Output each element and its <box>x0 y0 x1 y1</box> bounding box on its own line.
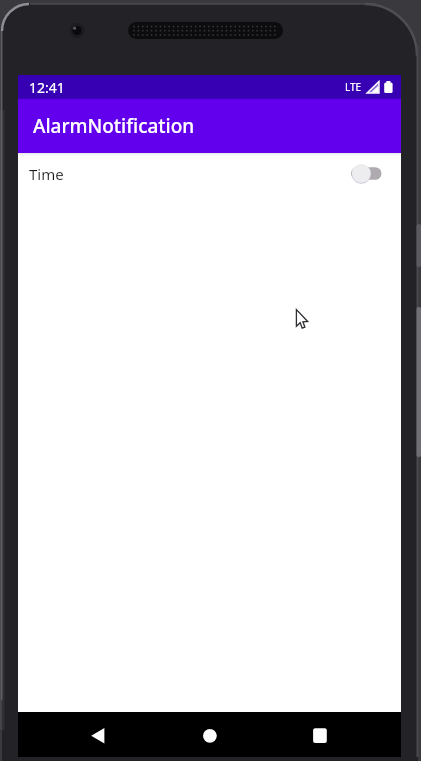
button[interactable] <box>273 712 401 757</box>
staticText: 12:41 <box>29 78 65 97</box>
button[interactable]: Time <box>18 153 401 194</box>
button[interactable] <box>347 163 382 184</box>
button[interactable] <box>145 712 273 757</box>
staticText: Time <box>29 164 64 184</box>
staticText: AlarmNotification <box>33 113 195 139</box>
button[interactable] <box>18 712 145 757</box>
staticText: LTE <box>345 80 362 94</box>
